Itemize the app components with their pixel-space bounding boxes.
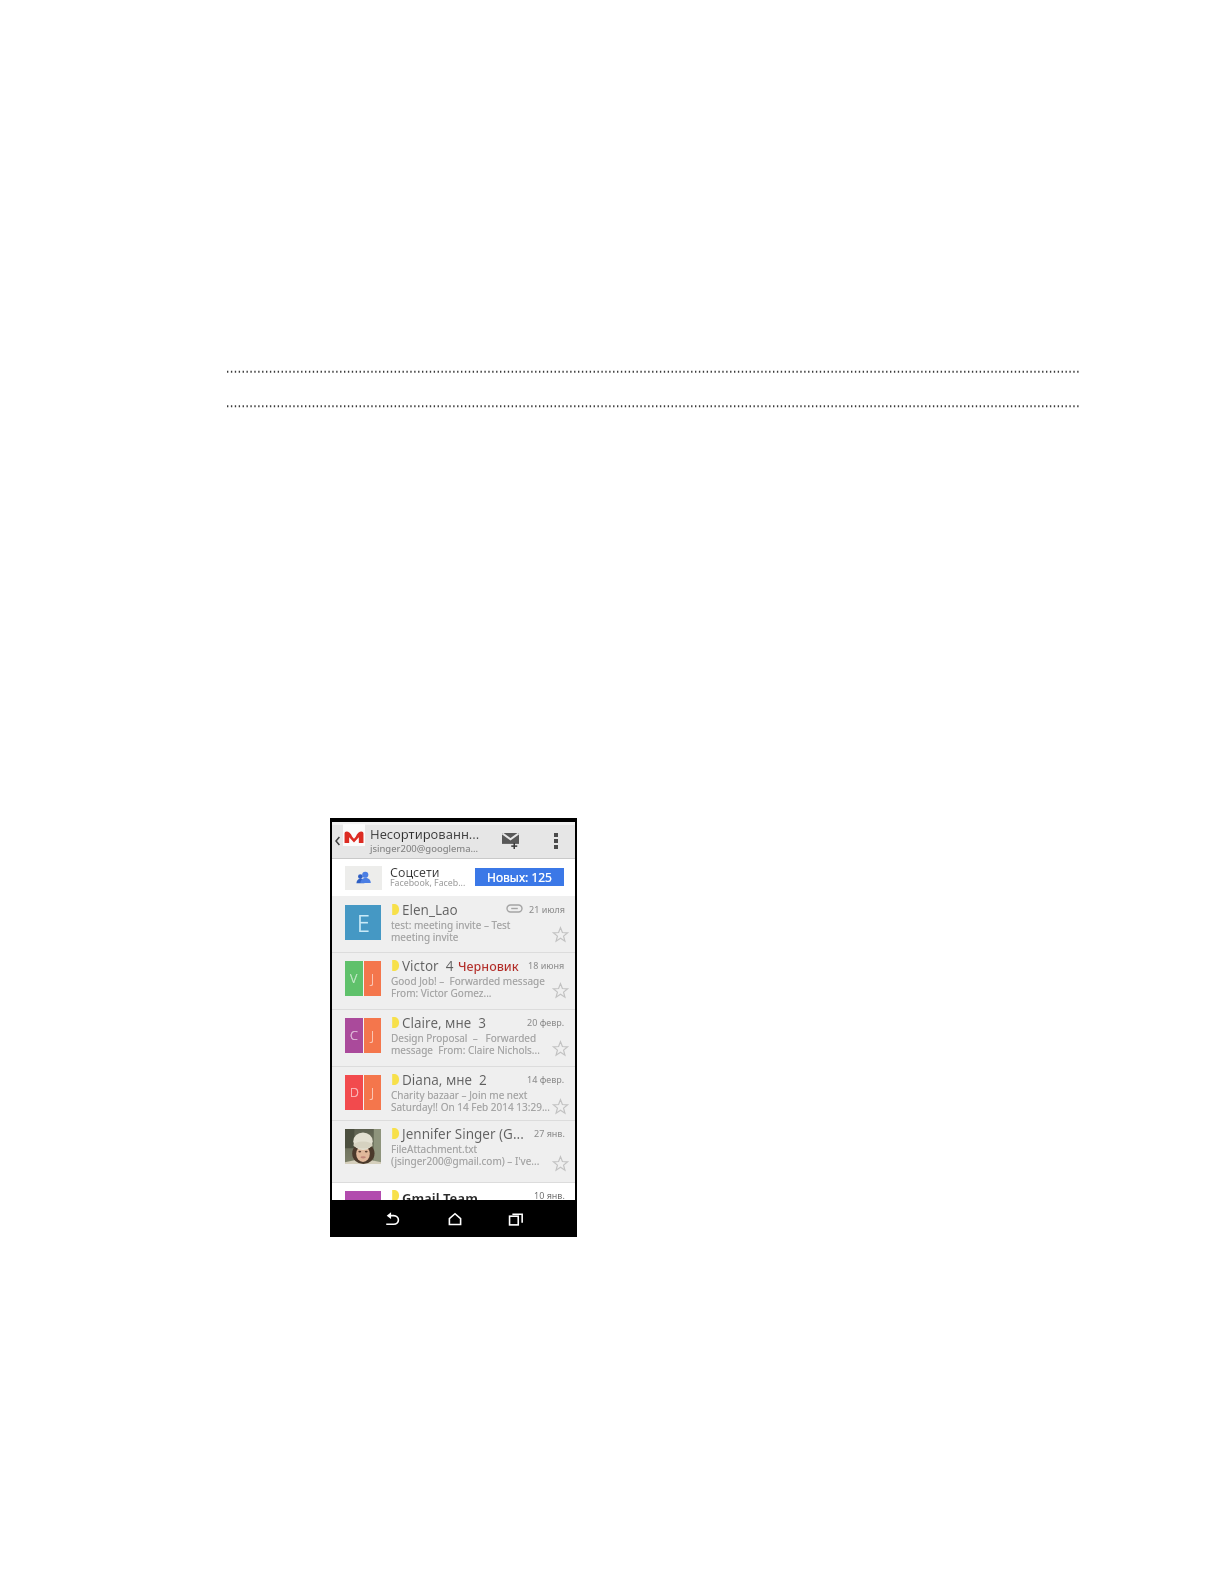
staticText: Saturday!! On 14 Feb 2014 13:29... (391, 1100, 550, 1114)
button[interactable]: Gmail Team (332, 1182, 575, 1200)
staticText: Jennifer Singer (G... (402, 1125, 524, 1143)
staticText: meeting invite (391, 930, 459, 944)
staticText: Соцсети (390, 864, 440, 881)
button[interactable]: Star (553, 1156, 568, 1171)
staticText: 27 янв. (534, 1127, 565, 1139)
staticText: 14 февр. (527, 1073, 565, 1085)
button[interactable]: D (332, 1066, 575, 1120)
staticText: FileAttachment.txt (391, 1142, 478, 1156)
staticText: J (371, 970, 375, 987)
staticText: Elen_Lao (402, 901, 458, 919)
staticText: 20 февр. (527, 1016, 565, 1028)
button[interactable]: Jennifer Singer (G... (332, 1120, 575, 1182)
staticText: Design Proposal – Forwarded (391, 1031, 537, 1045)
staticText: J (371, 1027, 375, 1044)
staticText: C (350, 1027, 358, 1044)
staticText: 21 июля (529, 903, 565, 915)
staticText: Новых: 125 (487, 869, 552, 885)
staticText: 10 янв. (534, 1189, 565, 1201)
button[interactable]: Compose (491, 822, 529, 859)
button[interactable]: Соцсети (332, 859, 575, 896)
staticText: jsinger200@googlema... (370, 842, 479, 855)
button[interactable]: Star (553, 983, 568, 998)
staticText: E (357, 907, 370, 938)
staticText: Несортированн... (370, 825, 480, 843)
staticText: Gmail Team (402, 1189, 478, 1207)
button[interactable]: Star (553, 927, 568, 942)
button[interactable]: Back (374, 1200, 410, 1237)
staticText: test: meeting invite – Test (391, 918, 511, 932)
button[interactable]: More options (541, 822, 571, 859)
staticText: Charity bazaar – Join me next (391, 1088, 528, 1102)
staticText: From: Victor Gomez... (391, 986, 492, 1000)
staticText: 18 июня (528, 959, 565, 971)
staticText: message From: Claire Nichols... (391, 1043, 540, 1057)
button[interactable]: Recent apps (498, 1200, 534, 1237)
button[interactable]: E (332, 896, 575, 952)
button[interactable]: Back (332, 822, 343, 859)
button[interactable]: Star (553, 1041, 568, 1056)
staticText: Facebook, Faceb... (390, 877, 466, 889)
staticText: D (350, 1084, 359, 1101)
staticText: Good Job! – Forwarded message (391, 974, 545, 988)
button[interactable]: Новых: 125 (475, 868, 564, 886)
staticText: Victor 4 (402, 957, 454, 975)
staticText: (jsinger200@gmail.com) – I've... (391, 1154, 540, 1168)
staticText: Diana, мне 2 (402, 1071, 487, 1089)
button[interactable]: Home (437, 1200, 473, 1237)
staticText: J (371, 1084, 375, 1101)
staticText: Claire, мне 3 (402, 1014, 486, 1032)
staticText: V (350, 970, 358, 987)
button[interactable]: Star (553, 1099, 568, 1114)
button[interactable]: C (332, 1009, 575, 1066)
staticText: Черновик (458, 958, 519, 975)
button[interactable]: V (332, 952, 575, 1009)
